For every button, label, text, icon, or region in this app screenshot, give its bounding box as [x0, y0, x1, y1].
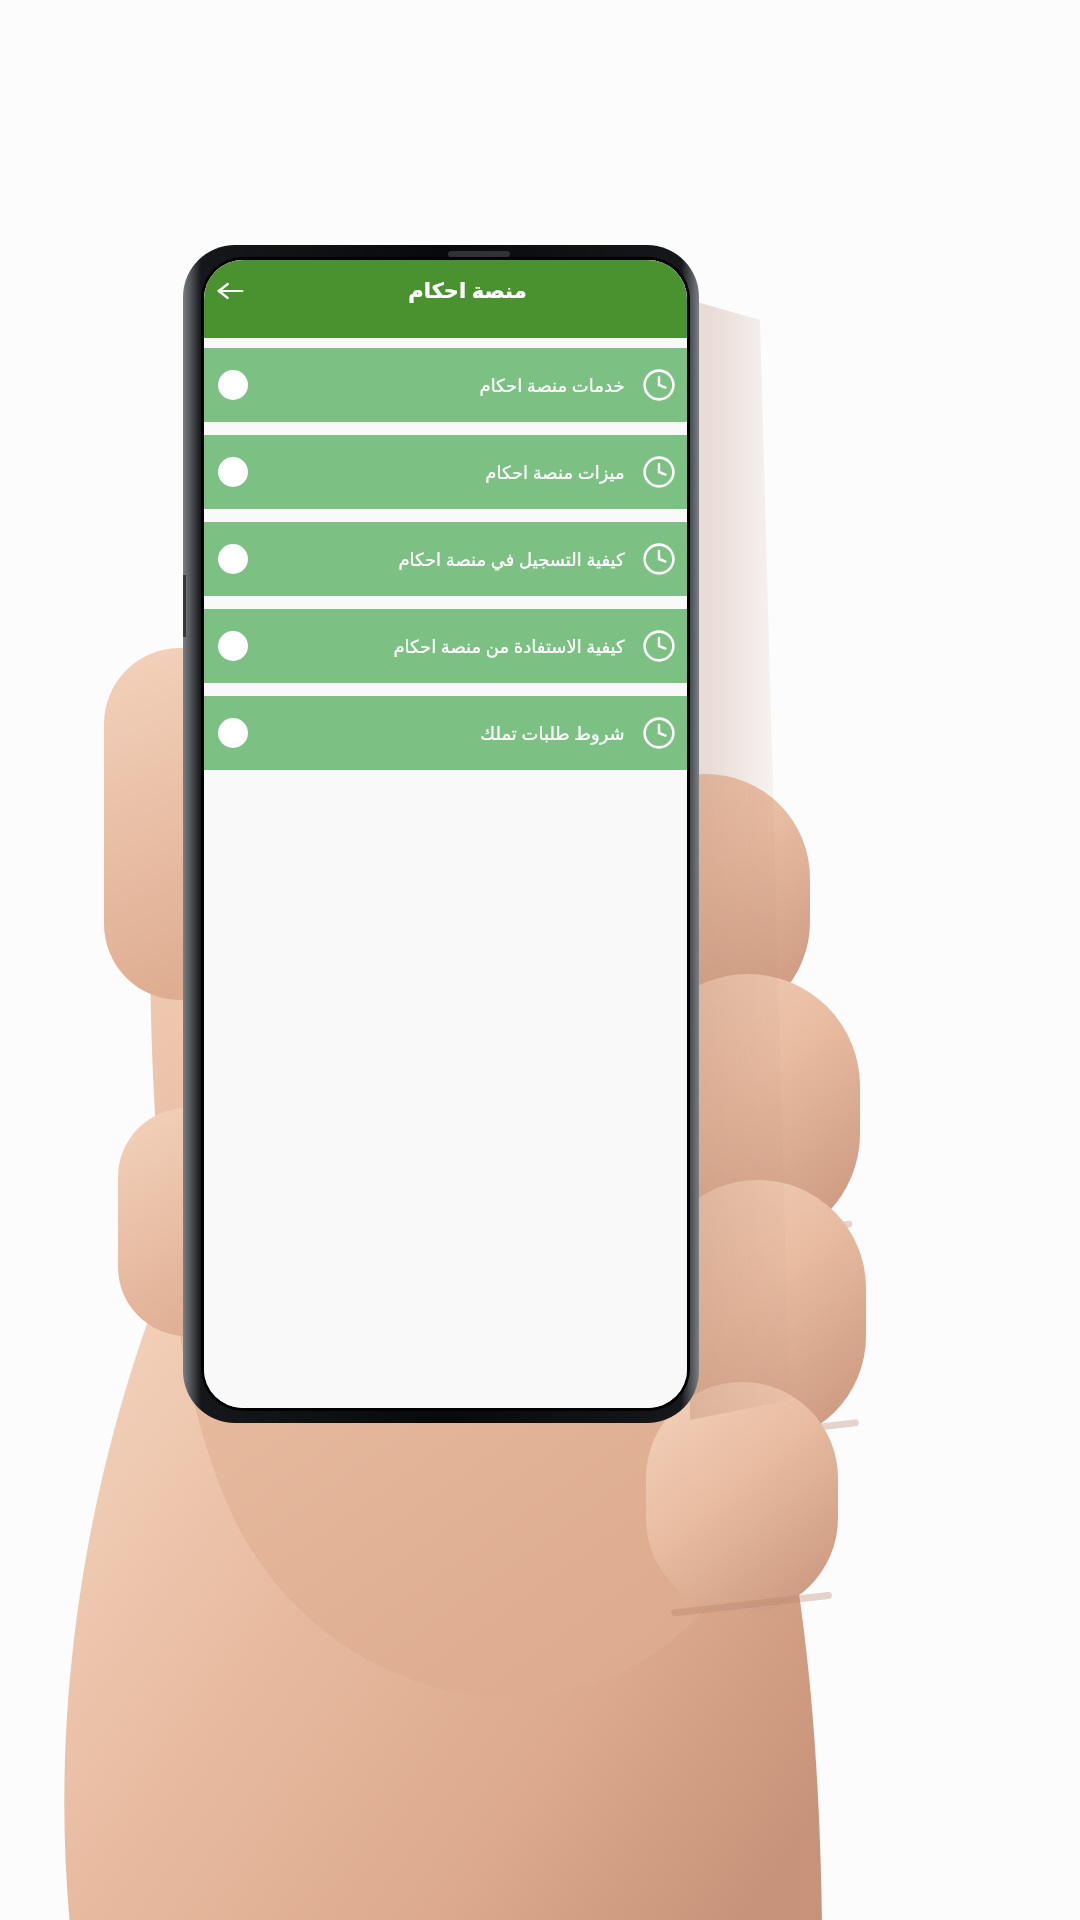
button[interactable]: كيفية التسجيل في منصة احكام	[204, 522, 687, 596]
staticText: ميزات منصة احكام	[485, 460, 625, 485]
staticText: شروط طلبات تملك	[480, 721, 625, 746]
staticText: كيفية التسجيل في منصة احكام	[398, 547, 625, 572]
button[interactable]: خدمات منصة احكام	[204, 348, 687, 422]
staticText: خدمات منصة احكام	[479, 373, 625, 398]
button[interactable]: كيفية الاستفادة من منصة احكام	[204, 609, 687, 683]
button[interactable]: شروط طلبات تملك	[204, 696, 687, 770]
button[interactable]: ميزات منصة احكام	[204, 435, 687, 509]
button[interactable]: Back	[204, 265, 256, 317]
staticText: منصة احكام	[408, 276, 527, 305]
staticText: كيفية الاستفادة من منصة احكام	[393, 634, 625, 659]
